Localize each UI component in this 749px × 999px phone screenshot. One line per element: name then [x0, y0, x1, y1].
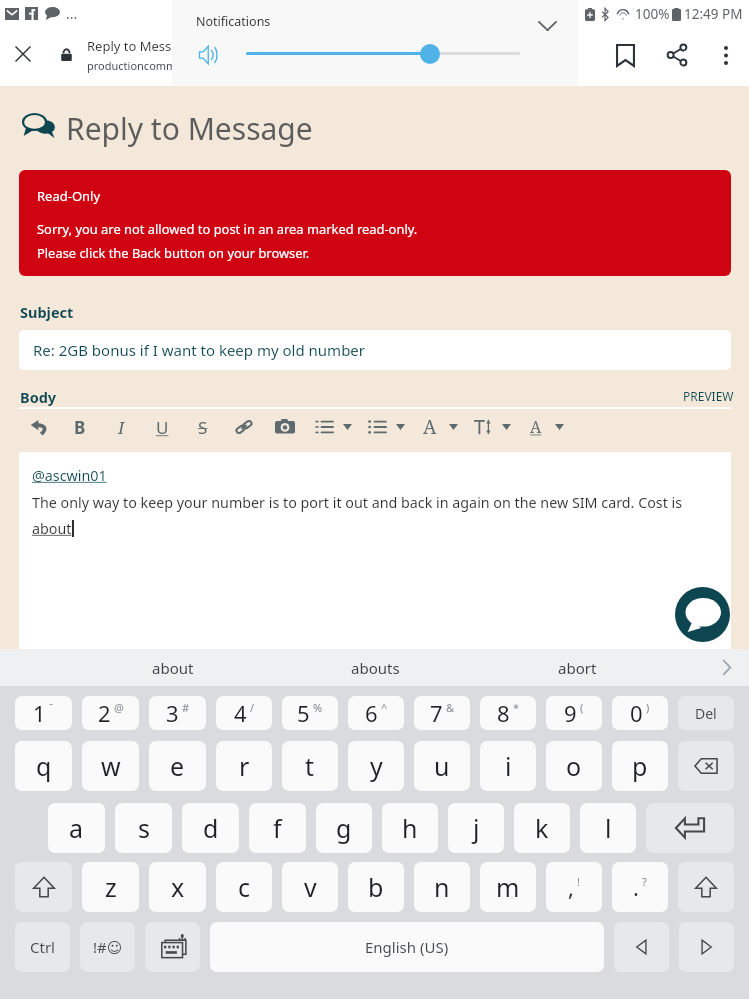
- button[interactable]: 2: [82, 696, 139, 730]
- button[interactable]: b: [348, 862, 404, 912]
- button[interactable]: More options: [549, 414, 569, 440]
- button[interactable]: More options: [390, 414, 410, 440]
- staticText: Reply to Message: [66, 108, 313, 149]
- button[interactable]: Move cursor left: [614, 922, 669, 972]
- button[interactable]: Bulleted list: [364, 414, 390, 440]
- staticText: 7: [430, 698, 443, 728]
- button[interactable]: a: [48, 803, 105, 853]
- button[interactable]: i: [480, 741, 536, 791]
- button[interactable]: !#☺: [80, 922, 135, 972]
- button[interactable]: v: [282, 862, 338, 912]
- staticText: @ascwin01: [32, 466, 107, 485]
- staticText: 6: [365, 698, 378, 728]
- button[interactable]: Bookmark: [599, 29, 651, 81]
- button[interactable]: Chat: [675, 587, 730, 642]
- button[interactable]: More options: [496, 414, 516, 440]
- button[interactable]: Ctrl: [15, 922, 70, 972]
- button[interactable]: Del: [678, 696, 734, 730]
- button[interactable]: e: [149, 741, 206, 791]
- button[interactable]: o: [546, 741, 602, 791]
- staticText: 4: [234, 698, 247, 728]
- button[interactable]: Insert photo: [272, 414, 298, 440]
- button[interactable]: U: [149, 414, 175, 440]
- button[interactable]: 5: [282, 696, 338, 730]
- button[interactable]: q: [15, 741, 72, 791]
- button[interactable]: More options: [443, 414, 463, 440]
- button[interactable]: Text size: [470, 414, 496, 440]
- staticText: g: [336, 811, 352, 845]
- button[interactable]: English (US): [210, 922, 604, 972]
- button[interactable]: z: [82, 862, 139, 912]
- button[interactable]: Volume slider: [420, 44, 440, 64]
- staticText: abouts: [351, 658, 400, 678]
- button[interactable]: s: [115, 803, 172, 853]
- button[interactable]: j: [448, 803, 504, 853]
- button[interactable]: More options: [337, 414, 357, 440]
- button[interactable]: Shift: [15, 862, 72, 912]
- staticText: @: [114, 700, 124, 715]
- staticText: B: [74, 416, 86, 439]
- staticText: ): [646, 700, 650, 715]
- button[interactable]: Link: [231, 414, 257, 440]
- button[interactable]: h: [382, 803, 438, 853]
- button[interactable]: n: [414, 862, 470, 912]
- button[interactable]: I: [108, 414, 134, 440]
- button[interactable]: t: [282, 741, 338, 791]
- button[interactable]: 7: [414, 696, 470, 730]
- button[interactable]: Change keyboard: [145, 922, 200, 972]
- button[interactable]: More options: [703, 32, 749, 78]
- button[interactable]: .: [612, 862, 668, 912]
- button[interactable]: 3: [149, 696, 206, 730]
- button[interactable]: w: [82, 741, 139, 791]
- staticText: 2: [98, 698, 111, 728]
- button[interactable]: Undo: [26, 414, 52, 440]
- button[interactable]: f: [249, 803, 306, 853]
- button[interactable]: Backspace: [678, 741, 734, 791]
- button[interactable]: Close: [3, 31, 43, 77]
- button[interactable]: g: [316, 803, 372, 853]
- button[interactable]: ,: [546, 862, 602, 912]
- button[interactable]: PREVIEW: [683, 388, 734, 404]
- button[interactable]: l: [580, 803, 636, 853]
- staticText: 8: [497, 698, 510, 728]
- staticText: ...: [66, 4, 78, 23]
- staticText: (: [580, 700, 584, 715]
- button[interactable]: u: [414, 741, 470, 791]
- button[interactable]: Share: [651, 29, 703, 81]
- button[interactable]: 9: [546, 696, 602, 730]
- button[interactable]: Numbered list: [311, 414, 337, 440]
- button[interactable]: S: [190, 414, 216, 440]
- button[interactable]: abort: [476, 649, 678, 686]
- button[interactable]: 6: [348, 696, 404, 730]
- button[interactable]: A: [523, 414, 549, 440]
- button[interactable]: Enter: [646, 803, 734, 853]
- staticText: u: [434, 749, 450, 783]
- button[interactable]: More suggestions: [705, 649, 749, 686]
- button[interactable]: r: [216, 741, 272, 791]
- button[interactable]: Re: 2GB bonus if I want to keep my old n…: [19, 330, 731, 370]
- button[interactable]: k: [514, 803, 570, 853]
- button[interactable]: about: [72, 649, 274, 686]
- button[interactable]: x: [149, 862, 206, 912]
- button[interactable]: p: [612, 741, 668, 791]
- staticText: Del: [695, 704, 717, 723]
- staticText: ^: [381, 700, 388, 715]
- button[interactable]: A: [417, 414, 443, 440]
- button[interactable]: 8: [480, 696, 536, 730]
- button[interactable]: d: [182, 803, 239, 853]
- button[interactable]: Site information: [49, 31, 83, 77]
- button[interactable]: 4: [216, 696, 272, 730]
- button[interactable]: Move cursor right: [679, 922, 734, 972]
- staticText: 1: [33, 698, 46, 728]
- staticText: 100%: [635, 5, 670, 23]
- button[interactable]: c: [216, 862, 272, 912]
- button[interactable]: m: [480, 862, 536, 912]
- button[interactable]: Shift: [678, 862, 734, 912]
- staticText: A: [423, 414, 437, 440]
- button[interactable]: Expand notifications: [527, 6, 567, 46]
- button[interactable]: 1: [15, 696, 72, 730]
- button[interactable]: y: [348, 741, 404, 791]
- button[interactable]: abouts: [274, 649, 476, 686]
- button[interactable]: B: [67, 414, 93, 440]
- button[interactable]: 0: [612, 696, 668, 730]
